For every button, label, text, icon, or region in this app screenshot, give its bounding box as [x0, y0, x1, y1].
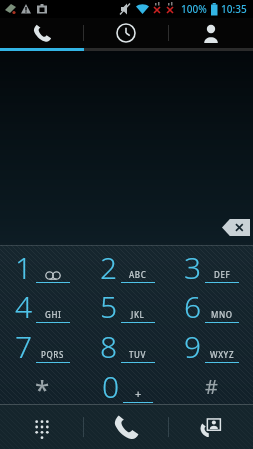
button[interactable]: Dialpad [0, 404, 83, 449]
staticText: 100% [181, 2, 207, 16]
staticText: 9 [184, 326, 202, 366]
button[interactable]: 5 [85, 284, 169, 324]
staticText: 8 [100, 326, 118, 366]
button[interactable]: Contacts [169, 18, 253, 48]
button[interactable]: 2 [85, 245, 169, 284]
staticText: 3 [184, 247, 202, 286]
button[interactable]: 8 [85, 324, 169, 364]
staticText: TUV [129, 349, 147, 360]
staticText: GHI [45, 309, 62, 320]
button[interactable]: Recents [84, 18, 168, 48]
staticText: ABC [129, 269, 147, 280]
button[interactable]: 0 [85, 364, 169, 404]
button[interactable]: 7 [0, 324, 85, 364]
button[interactable]: 9 [169, 324, 253, 364]
button[interactable]: # [169, 364, 253, 404]
staticText: DEF [214, 269, 231, 280]
staticText: PQRS [41, 349, 65, 360]
button[interactable]: 1 [0, 245, 85, 284]
button[interactable]: Contacts [169, 404, 253, 449]
staticText: JKL [131, 309, 145, 320]
staticText: * [35, 371, 50, 406]
staticText: 2 [100, 247, 118, 286]
staticText: 1 [15, 247, 33, 286]
staticText: 4 [15, 286, 33, 326]
staticText: 0 [102, 366, 120, 406]
staticText: MNO [211, 309, 233, 320]
button[interactable]: Call log [0, 18, 83, 48]
staticText: 6 [184, 286, 202, 326]
staticText: 10:35 [221, 2, 247, 16]
button[interactable]: Delete [222, 219, 250, 236]
staticText: 5 [100, 286, 118, 326]
button[interactable]: Call [84, 404, 168, 449]
staticText: + [135, 386, 142, 401]
button[interactable]: 6 [169, 284, 253, 324]
button[interactable]: 4 [0, 284, 85, 324]
staticText: # [205, 373, 218, 400]
button[interactable]: * [0, 364, 85, 404]
button[interactable]: 3 [169, 245, 253, 284]
staticText: 7 [15, 326, 33, 366]
staticText: WXYZ [210, 349, 235, 360]
